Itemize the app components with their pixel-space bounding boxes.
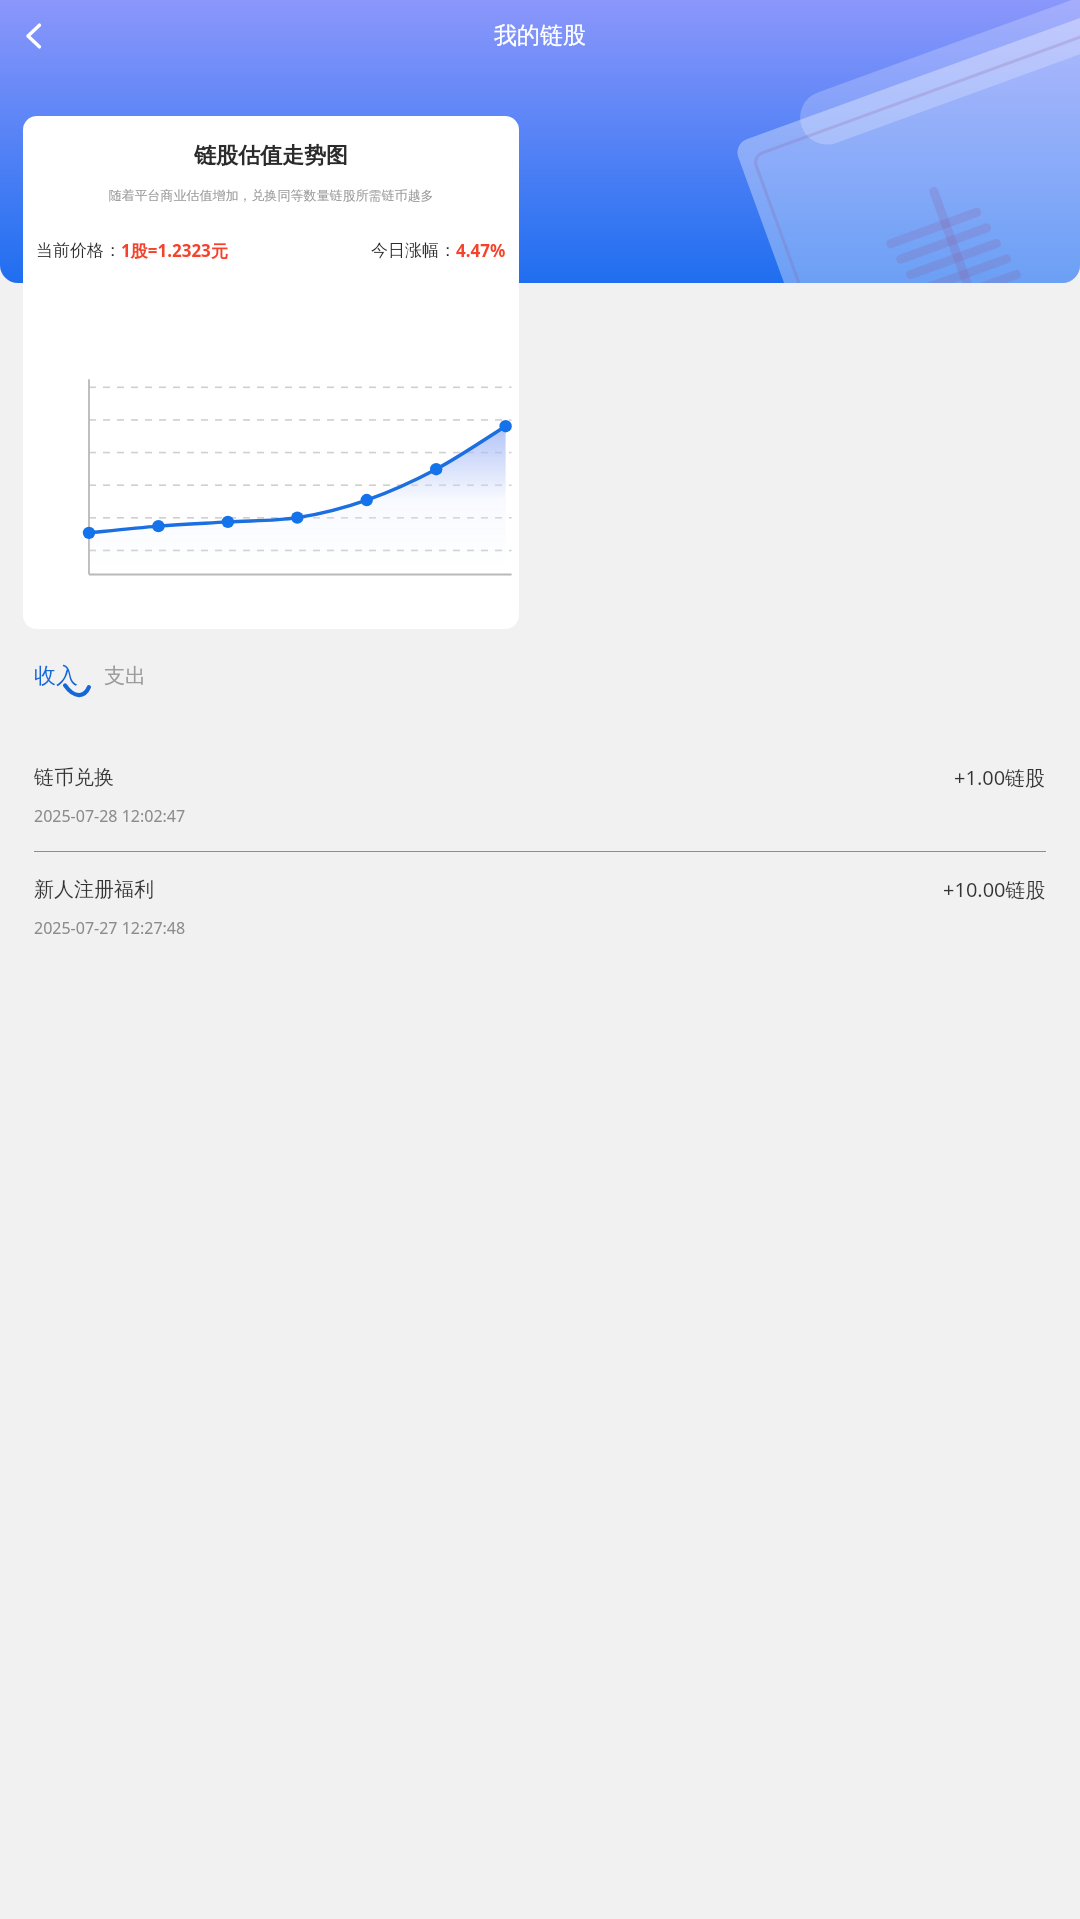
staticText: 我的链股	[494, 21, 586, 50]
staticText: 随着平台商业估值增加，兑换同等数量链股所需链币越多	[23, 187, 519, 203]
staticText: +10.00链股	[943, 876, 1046, 903]
staticText: 支出	[104, 663, 146, 689]
staticText: 收入	[34, 662, 78, 690]
button[interactable]: 链币兑换	[34, 740, 1046, 851]
staticText: 新人注册福利	[34, 877, 154, 902]
staticText: 1股=1.2323元	[121, 239, 228, 262]
button[interactable]: 收入	[34, 662, 84, 690]
staticText: 链股估值走势图	[23, 142, 519, 170]
staticText: 2025-07-28 12:02:47	[34, 805, 186, 827]
staticText: +1.00链股	[954, 764, 1046, 791]
staticText: 4.47%	[456, 239, 506, 262]
staticText: 当前价格：	[36, 240, 121, 261]
button[interactable]: 新人注册福利	[34, 852, 1046, 963]
button[interactable]: Back	[8, 10, 60, 62]
staticText: 2025-07-27 12:27:48	[34, 917, 186, 939]
staticText: 链币兑换	[34, 765, 114, 790]
button[interactable]: 支出	[104, 663, 146, 690]
staticText: 今日涨幅：	[371, 240, 456, 261]
